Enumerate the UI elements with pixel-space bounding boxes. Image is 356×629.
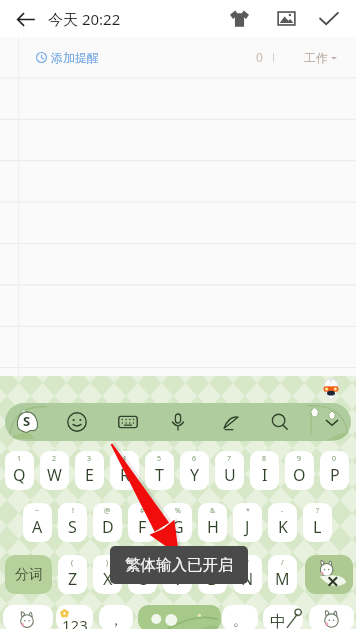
button[interactable]: ? — [303, 503, 332, 542]
button[interactable]: 4 — [110, 451, 139, 490]
staticText: R — [120, 464, 130, 486]
staticText: 中 — [270, 612, 286, 629]
staticText: 4 — [122, 454, 127, 464]
staticText: ) — [106, 558, 109, 568]
staticText: 。 — [233, 612, 247, 629]
button[interactable]: Handwriting — [216, 407, 246, 437]
staticText: G — [172, 516, 184, 538]
staticText: S — [23, 412, 31, 430]
staticText: V — [173, 568, 183, 590]
button[interactable]: Backspace — [305, 555, 353, 594]
button[interactable]: ~ — [23, 503, 52, 542]
staticText: B — [207, 568, 218, 590]
button[interactable]: Voice input — [163, 407, 193, 437]
staticText: ; — [212, 558, 214, 568]
staticText: J — [245, 516, 250, 538]
staticText: 2 — [52, 454, 57, 464]
button[interactable]: Space — [138, 605, 221, 629]
staticText: N — [241, 568, 254, 590]
staticText: 工作 — [304, 50, 328, 65]
staticText: E — [85, 464, 94, 486]
button[interactable]: Done — [313, 3, 344, 34]
staticText: W — [47, 464, 62, 486]
button[interactable]: @ — [93, 503, 122, 542]
staticText: 6 — [192, 454, 197, 464]
staticText: H — [207, 516, 219, 538]
button[interactable]: 分词 — [5, 555, 52, 594]
staticText: C — [137, 568, 148, 590]
button[interactable]: / — [268, 555, 297, 594]
button[interactable]: 1 — [5, 451, 34, 490]
button[interactable]: Assistant — [321, 378, 341, 400]
button[interactable]: Back — [10, 4, 40, 34]
button[interactable]: 3 — [75, 451, 104, 490]
button[interactable]: ; — [198, 555, 227, 594]
staticText: F — [138, 516, 147, 538]
staticText: U — [224, 464, 236, 486]
button[interactable]: 0 — [320, 451, 349, 490]
button[interactable]: ( — [58, 555, 87, 594]
staticText: Z — [68, 568, 78, 590]
staticText: 今天 20:22 — [48, 9, 121, 29]
staticText: ~ — [35, 506, 40, 516]
staticText: 繁体输入已开启 — [125, 555, 234, 575]
button[interactable]: Tag — [224, 3, 255, 34]
button[interactable]: ! — [58, 503, 87, 542]
staticText: ， — [109, 612, 123, 629]
button[interactable]: 添加提醒 — [36, 50, 99, 65]
staticText: 7 — [227, 454, 232, 464]
button[interactable]: Stickers — [3, 605, 53, 629]
staticText: 9 — [297, 454, 302, 464]
staticText: K — [278, 516, 288, 538]
staticText: 分词 — [15, 566, 43, 584]
button[interactable]: 5 — [145, 451, 174, 490]
staticText: " — [246, 558, 249, 568]
button[interactable]: 8 — [250, 451, 279, 490]
button[interactable]: 6 — [180, 451, 209, 490]
staticText: 0 — [256, 49, 263, 65]
staticText: D — [102, 516, 114, 538]
button[interactable]: ) — [93, 555, 122, 594]
staticText: : — [177, 558, 179, 568]
button[interactable]: 工作 — [304, 50, 337, 65]
button[interactable]: # — [128, 503, 157, 542]
button[interactable]: 123 — [56, 605, 93, 629]
staticText: Y — [190, 464, 200, 486]
button[interactable]: 2 — [40, 451, 69, 490]
button[interactable]: ， — [99, 605, 133, 629]
button[interactable]: : — [163, 555, 192, 594]
staticText: 1 — [17, 454, 22, 464]
button[interactable]: 9 — [285, 451, 314, 490]
button[interactable]: Input method logo — [11, 406, 43, 438]
staticText: 8 — [262, 454, 267, 464]
staticText: ! — [72, 506, 74, 516]
staticText: 3 — [87, 454, 92, 464]
staticText: S — [68, 516, 77, 538]
staticText: - — [281, 506, 284, 516]
button[interactable]: Search — [265, 407, 295, 437]
button[interactable]: % — [163, 503, 192, 542]
staticText: M — [275, 568, 290, 590]
button[interactable]: Keyboard layout — [113, 407, 143, 437]
staticText: 123 — [62, 615, 88, 629]
button[interactable]: 中 — [263, 605, 303, 629]
button[interactable]: 。 — [222, 605, 258, 629]
button[interactable]: " — [233, 555, 262, 594]
button[interactable]: - — [268, 503, 297, 542]
button[interactable]: ' — [128, 555, 157, 594]
staticText: O — [293, 464, 306, 486]
staticText: % — [175, 506, 181, 516]
staticText: & — [210, 506, 216, 516]
button[interactable]: Emoji — [62, 407, 92, 437]
button[interactable]: * — [233, 503, 262, 542]
button[interactable]: Enter — [309, 605, 354, 629]
button[interactable]: Hide keyboard — [317, 407, 347, 437]
button[interactable]: Insert image — [271, 3, 302, 34]
staticText: T — [155, 464, 164, 486]
staticText: I — [262, 464, 268, 486]
button[interactable]: & — [198, 503, 227, 542]
button[interactable]: 7 — [215, 451, 244, 490]
staticText: A — [32, 516, 43, 538]
staticText: @ — [104, 506, 111, 516]
staticText: ? — [316, 506, 320, 516]
